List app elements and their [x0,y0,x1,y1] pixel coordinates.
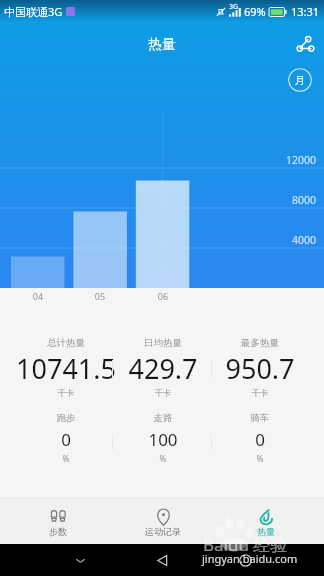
staticText: % [103,453,223,465]
button[interactable]: Share [292,31,318,57]
staticText: 05 [73,290,127,302]
staticText: 950.7 [200,350,320,387]
button[interactable]: 步数 [6,499,110,544]
staticText: % [6,453,126,465]
button[interactable]: Back [149,547,175,573]
staticText: 429.7 [103,350,223,387]
button[interactable] [108,405,216,467]
staticText: % [200,453,320,465]
staticText: 0 [200,428,320,451]
staticText: 运动记录 [145,526,181,537]
button[interactable] [0,405,108,467]
staticText: 热量 [257,526,275,537]
staticText: jingyan.baidu.com [202,551,298,566]
staticText: 总计热量 [6,337,126,349]
staticText: 走路 [103,412,223,424]
staticText: 日均热量 [103,337,223,349]
staticText: 千卡 [103,388,223,399]
staticText: 0 [6,428,126,451]
staticText: 千卡 [200,388,320,399]
staticText: 8000 [292,193,317,207]
button[interactable]: 热量 [214,499,318,544]
staticText: 热量 [148,36,176,54]
button[interactable]: Home [232,547,258,573]
button[interactable] [0,330,108,402]
button[interactable] [108,330,216,402]
staticText: 12000 [286,153,317,167]
staticText: 中国联通3G [4,4,63,19]
button[interactable]: 运动记录 [111,499,215,544]
staticText: 最多热量 [200,337,320,349]
staticText: Baidu 经验 [203,533,288,556]
staticText: 步数 [49,526,67,537]
button[interactable] [216,405,324,467]
button[interactable]: Month range [288,68,312,92]
staticText: 3G [229,2,239,12]
staticText: 跑步 [6,412,126,424]
button[interactable]: Hide keyboard [67,547,93,573]
button[interactable] [216,330,324,402]
staticText: 13:31 [291,4,320,19]
staticText: 04 [11,290,65,302]
staticText: 4000 [292,233,317,247]
staticText: 06 [136,290,190,302]
staticText: 千卡 [6,388,126,399]
staticText: 骑车 [200,412,320,424]
staticText: 10741.5 [6,350,126,387]
staticText: 月 [295,74,305,87]
staticText: 100 [103,428,223,451]
staticText: 69% [244,4,266,19]
